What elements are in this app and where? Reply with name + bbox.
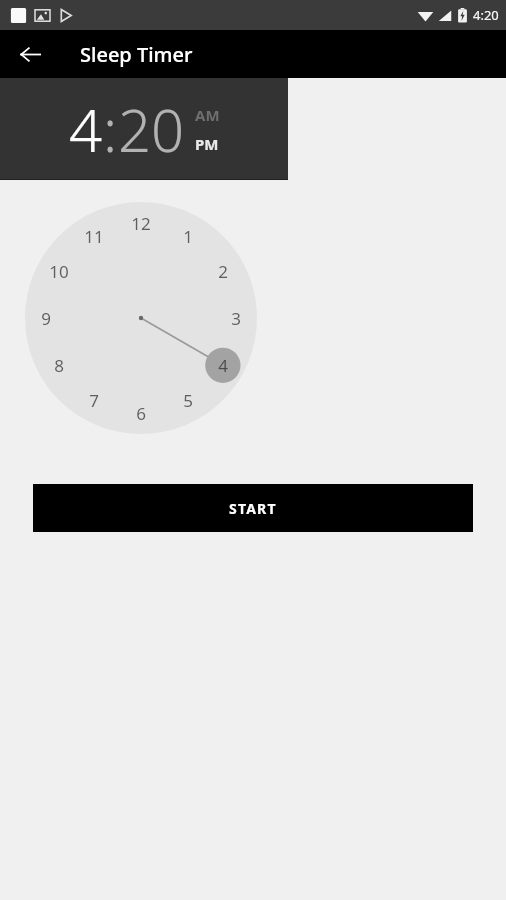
staticText: 10 [49, 260, 69, 283]
staticText: 4 [69, 90, 103, 169]
staticText: Sleep Timer [80, 41, 193, 68]
button[interactable]: Clock face, 4:20 PM [25, 202, 257, 434]
button[interactable]: 4 [69, 90, 103, 169]
button[interactable]: PM [195, 133, 219, 155]
staticText: 12 [131, 212, 151, 235]
staticText: 2 [218, 260, 228, 283]
staticText: 20 [118, 90, 185, 169]
button[interactable]: Back [10, 34, 50, 74]
staticText: START [229, 499, 277, 518]
staticText: 6 [136, 402, 146, 425]
staticText: PM [195, 134, 219, 154]
staticText: 4 [218, 354, 228, 377]
button[interactable]: 20 [118, 90, 185, 169]
staticText: AM [195, 105, 220, 125]
staticText: 7 [89, 389, 99, 412]
staticText: 11 [84, 225, 104, 248]
button[interactable]: START [33, 484, 473, 532]
staticText: 3 [231, 307, 241, 330]
button[interactable]: AM [195, 104, 220, 126]
staticText: 9 [41, 307, 51, 330]
staticText: 1 [183, 225, 193, 248]
staticText: 8 [54, 354, 64, 377]
staticText: : [103, 90, 118, 169]
staticText: 4:20 [473, 6, 499, 24]
staticText: 5 [183, 389, 193, 412]
